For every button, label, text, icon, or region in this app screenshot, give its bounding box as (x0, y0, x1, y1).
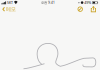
staticText: 메모 (6, 6, 16, 12)
button[interactable]: 메모 (2, 5, 16, 13)
staticText: 49% (84, 0, 91, 5)
staticText: 오전 9:41 (41, 0, 55, 5)
button[interactable]: Share (89, 6, 97, 13)
staticText: SKT (7, 0, 13, 5)
button[interactable]: Markup (76, 6, 84, 13)
